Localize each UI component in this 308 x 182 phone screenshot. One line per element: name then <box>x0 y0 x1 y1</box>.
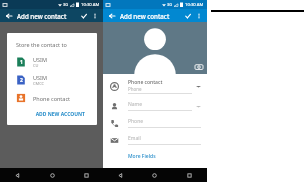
staticText: 1 <box>20 59 23 66</box>
button[interactable]: Recents <box>69 168 103 182</box>
staticText: Email <box>128 135 141 142</box>
button[interactable]: More Fields <box>103 152 207 162</box>
button[interactable]: Save <box>79 11 88 20</box>
staticText: 2 <box>20 77 23 84</box>
button[interactable]: Back <box>103 168 137 182</box>
button[interactable]: 1 <box>16 56 89 68</box>
button[interactable]: Save <box>183 11 192 20</box>
button[interactable]: Back <box>4 11 13 20</box>
staticText: CU <box>33 63 39 68</box>
staticText: Phone contact <box>33 95 71 102</box>
button[interactable]: Phone contact <box>16 93 89 103</box>
button[interactable]: Back <box>107 11 116 20</box>
staticText: Add new contact <box>17 12 67 20</box>
staticText: 10:30 AM <box>81 2 100 8</box>
staticText: USIM <box>33 74 47 81</box>
button[interactable]: Home <box>35 168 69 182</box>
button[interactable]: Change photo <box>195 63 203 71</box>
staticText: Phone contact <box>128 79 163 86</box>
button[interactable]: More options <box>194 11 203 20</box>
button[interactable]: 2 <box>16 74 89 86</box>
staticText: Add new contact <box>120 12 170 20</box>
button[interactable]: ADD NEW ACCOUNT <box>16 111 89 120</box>
button[interactable]: Recents <box>172 168 207 182</box>
button[interactable]: More options <box>90 11 99 20</box>
staticText: Store the contact to <box>16 41 67 48</box>
button[interactable]: Back <box>0 168 35 182</box>
staticText: More Fields <box>128 153 156 160</box>
button[interactable]: Home <box>137 168 172 182</box>
staticText: Phone <box>128 118 144 125</box>
staticText: 3G <box>167 2 173 7</box>
staticText: 10:30 AM <box>185 2 204 8</box>
staticText: USIM <box>33 56 47 63</box>
staticText: Name <box>128 101 143 108</box>
staticText: ADD NEW ACCOUNT <box>16 111 85 118</box>
staticText: 3G <box>63 2 69 7</box>
staticText: CMCC <box>33 81 45 86</box>
staticText: Phone <box>128 86 142 92</box>
